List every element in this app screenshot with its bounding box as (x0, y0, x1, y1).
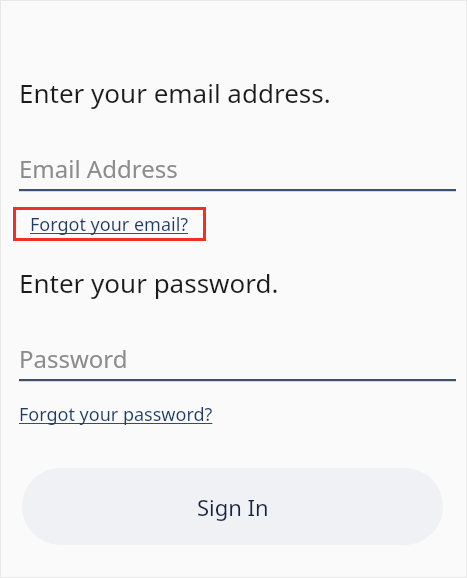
staticText: Forgot your password? (19, 402, 213, 427)
button[interactable]: Sign In (22, 468, 443, 545)
button[interactable]: Forgot your password? (19, 400, 213, 428)
staticText: Email Address (19, 152, 178, 185)
staticText: Password (19, 342, 128, 375)
staticText: Enter your email address. (19, 75, 331, 109)
staticText: Enter your password. (19, 265, 279, 299)
button[interactable]: Email Address (19, 152, 456, 192)
staticText: Forgot your email? (30, 212, 189, 237)
button[interactable]: Forgot your email? (13, 207, 206, 241)
staticText: Sign In (197, 492, 269, 522)
button[interactable]: Password (19, 342, 456, 382)
